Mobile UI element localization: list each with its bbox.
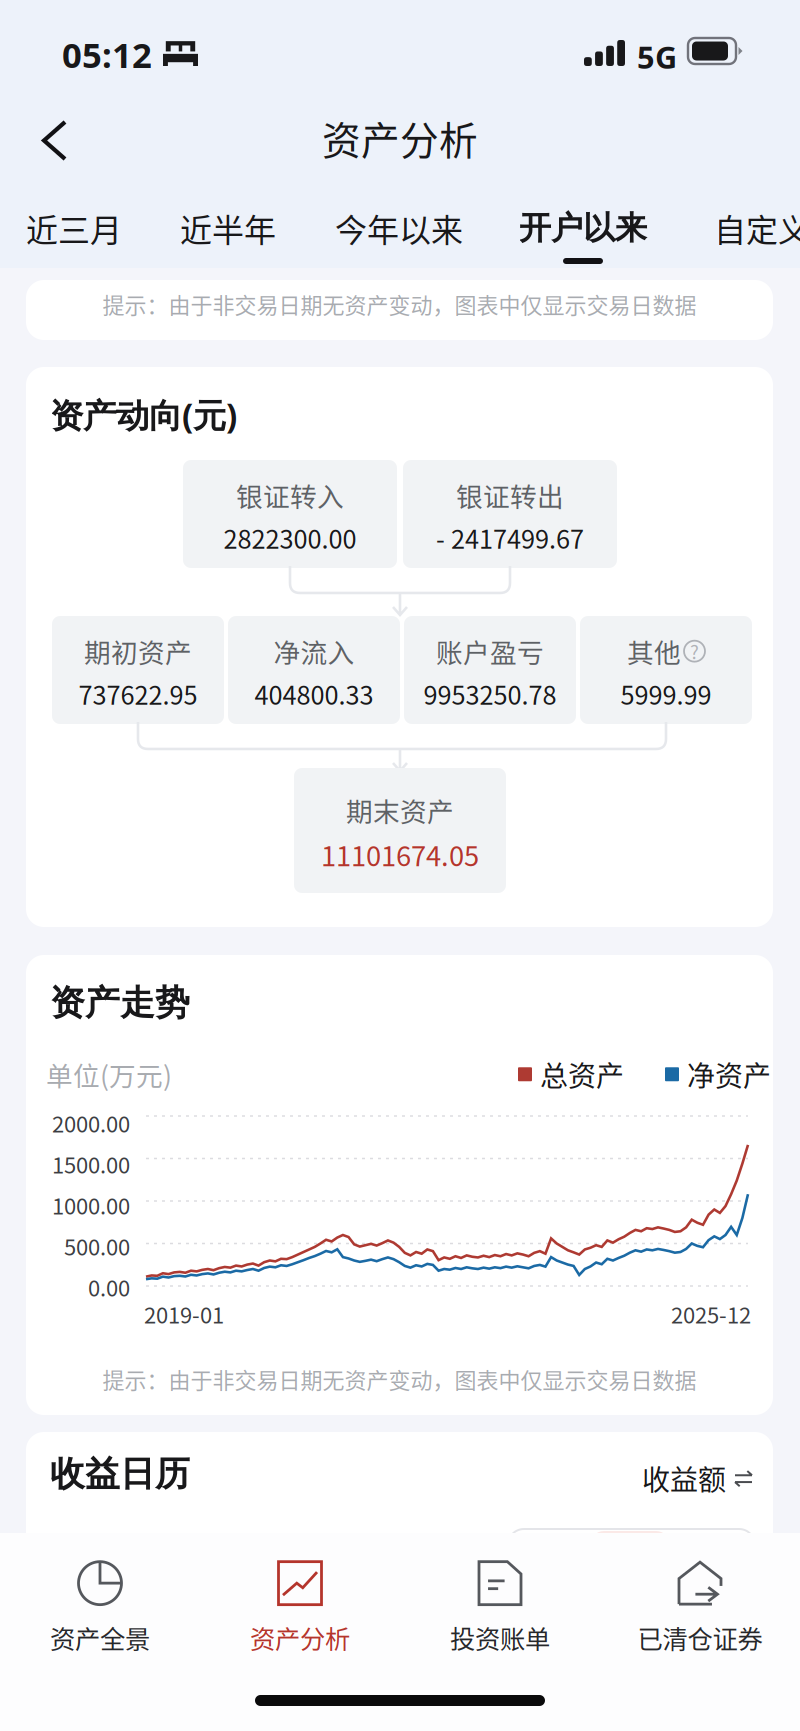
staticText: 5G [637, 36, 677, 78]
staticText: ? [690, 638, 699, 665]
button[interactable]: 资产全景 [0, 1543, 200, 1673]
staticText: 2822300.00 [223, 519, 356, 556]
staticText: 11101674.05 [321, 834, 479, 874]
button[interactable]: 投资账单 [400, 1543, 600, 1673]
button[interactable]: 资产分析 [200, 1543, 400, 1673]
staticText: 资产全景 [50, 1619, 150, 1656]
staticText: 总资产 [540, 1054, 624, 1094]
staticText: 收益日历 [50, 1452, 190, 1496]
staticText: 近三月 [26, 205, 122, 251]
button[interactable]: 开户以来 [483, 197, 683, 259]
button[interactable]: 已清仓证券 [600, 1543, 800, 1673]
staticText: 净流入 [273, 632, 354, 670]
staticText: 今年以来 [335, 205, 463, 251]
staticText: 提示：由于非交易日期无资产变动，图表中仅显示交易日数据 [102, 1363, 696, 1395]
staticText: 提示：由于非交易日期无资产变动，图表中仅显示交易日数据 [102, 288, 696, 320]
staticText: 2025-12 [671, 1298, 751, 1330]
staticText: 银证转入 [236, 476, 344, 514]
staticText: 9953250.78 [423, 675, 556, 712]
staticText: 资产走势 [50, 981, 190, 1025]
staticText: 期末资产 [346, 791, 454, 829]
button[interactable]: Back [17, 97, 92, 184]
button[interactable]: 收益额 [632, 1450, 763, 1506]
button[interactable]: 自定义 [662, 197, 800, 259]
staticText: 账户盈亏 [436, 632, 544, 670]
staticText: 404800.33 [254, 675, 373, 712]
staticText: 其他 [627, 632, 681, 670]
button[interactable]: 近半年 [128, 197, 328, 259]
staticText: 自定义 [714, 205, 800, 251]
staticText: - 2417499.67 [436, 519, 584, 556]
staticText: 5999.99 [620, 675, 711, 712]
staticText: 收益额 [642, 1458, 726, 1498]
staticText: 资产分析 [250, 1619, 350, 1656]
staticText: 开户以来 [519, 208, 647, 248]
staticText: 资产分析 [322, 110, 478, 166]
staticText: 2000.00 [52, 1107, 130, 1139]
staticText: 05:12 [62, 31, 152, 78]
staticText: 投资账单 [450, 1619, 550, 1656]
staticText: 500.00 [64, 1230, 130, 1262]
staticText: 期初资产 [84, 632, 192, 670]
staticText: 银证转出 [456, 476, 564, 514]
button[interactable]: 今年以来 [299, 197, 499, 259]
staticText: 0.00 [88, 1271, 130, 1303]
staticText: 资产动向(元) [50, 392, 237, 437]
staticText: 单位(万元) [46, 1055, 172, 1094]
staticText: 1000.00 [52, 1189, 130, 1221]
button[interactable]: 近三月 [0, 197, 174, 259]
staticText: 1500.00 [52, 1148, 130, 1180]
staticText: 2019-01 [144, 1298, 224, 1330]
staticText: 净资产 [687, 1054, 771, 1094]
staticText: 已清仓证券 [637, 1619, 762, 1656]
staticText: 近半年 [180, 205, 276, 251]
staticText: 737622.95 [78, 675, 197, 712]
